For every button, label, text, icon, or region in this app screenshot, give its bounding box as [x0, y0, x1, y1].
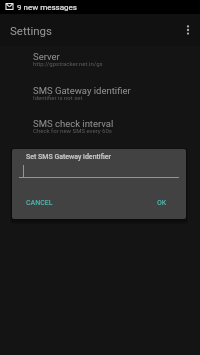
button[interactable]: More options — [174, 14, 200, 46]
button[interactable]: CANCEL — [21, 195, 58, 211]
button[interactable]: SMS check interval — [0, 113, 200, 145]
button[interactable]: Server — [0, 46, 200, 78]
staticText: OK — [157, 199, 167, 207]
staticText: Server — [33, 51, 60, 62]
staticText: CANCEL — [26, 199, 53, 207]
staticText: Set SMS Gateway identifier — [26, 153, 111, 161]
staticText: SMS check interval — [33, 118, 114, 129]
staticText: SMS Gateway identifier — [33, 85, 131, 96]
staticText: Identifier is not set — [33, 94, 83, 101]
button[interactable]: SMS Gateway identifier — [0, 80, 200, 112]
staticText: Check for new SMS every 60s — [33, 127, 112, 134]
button[interactable]: OK — [152, 195, 172, 211]
staticText: Settings — [10, 24, 52, 37]
staticText: http://gpstracker.net.in/gs — [33, 60, 103, 67]
staticText: 9 new messages — [17, 3, 77, 12]
